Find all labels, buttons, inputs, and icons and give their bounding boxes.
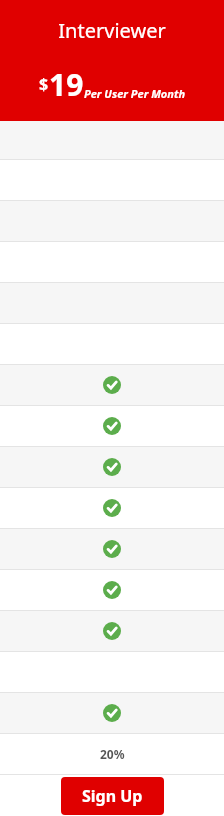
button[interactable]: Included: [0, 447, 224, 487]
button[interactable]: Included: [0, 611, 224, 651]
other: Included: [103, 622, 121, 640]
other: Included: [103, 581, 121, 599]
staticText: 20%: [100, 746, 125, 762]
staticText: Per User Per Month: [84, 86, 186, 101]
button[interactable]: Included: [0, 365, 224, 405]
other: Included: [103, 540, 121, 558]
other: Included: [103, 376, 121, 394]
button[interactable]: Included: [0, 529, 224, 569]
button[interactable]: Included: [0, 570, 224, 610]
staticText: 19: [49, 64, 84, 105]
button[interactable]: Sign Up: [61, 777, 164, 815]
staticText: $: [39, 73, 49, 95]
button[interactable]: Included: [0, 488, 224, 528]
other: Included: [103, 417, 121, 435]
other: Included: [103, 458, 121, 476]
other: Included: [103, 704, 121, 722]
button[interactable]: 20%: [0, 734, 224, 774]
staticText: Interviewer: [0, 17, 224, 44]
button[interactable]: Included: [0, 693, 224, 733]
button[interactable]: Included: [0, 406, 224, 446]
staticText: Sign Up: [82, 785, 143, 807]
other: Included: [103, 499, 121, 517]
